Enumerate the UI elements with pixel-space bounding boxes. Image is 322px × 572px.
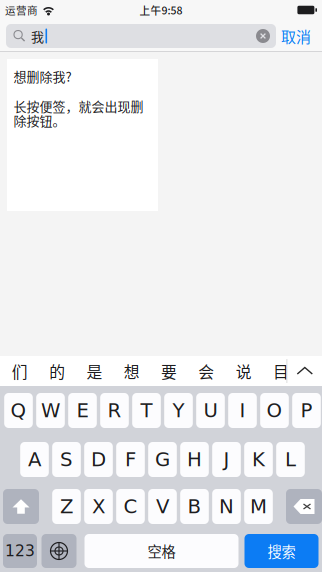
staticText: 空格	[147, 541, 175, 561]
button[interactable]: Shift	[3, 489, 39, 524]
staticText: C	[123, 495, 137, 518]
button[interactable]: L	[276, 442, 305, 477]
staticText: E	[76, 399, 88, 422]
button[interactable]: Q	[4, 393, 33, 428]
staticText: S	[60, 448, 73, 471]
button[interactable]: 的	[38, 356, 76, 386]
staticText: 长按便签，就会出现删	[13, 96, 143, 115]
staticText: J	[223, 448, 229, 471]
staticText: N	[219, 495, 234, 518]
staticText: 除按钮。	[13, 111, 65, 129]
button[interactable]: W	[36, 393, 65, 428]
staticText: W	[41, 399, 60, 422]
button[interactable]: S	[52, 442, 81, 477]
button[interactable]: D	[84, 442, 113, 477]
staticText: Q	[10, 399, 26, 422]
staticText: H	[187, 448, 202, 471]
button[interactable]: E	[68, 393, 97, 428]
staticText: F	[125, 448, 136, 471]
staticText: 搜索	[267, 541, 295, 561]
staticText: A	[28, 448, 41, 471]
button[interactable]: Y	[164, 393, 193, 428]
button[interactable]: I	[228, 393, 257, 428]
staticText: B	[187, 495, 201, 518]
button[interactable]: 想	[113, 356, 150, 386]
button[interactable]: A	[20, 442, 49, 477]
button[interactable]: B	[180, 489, 209, 524]
staticText: 的	[49, 360, 65, 382]
staticText: I	[239, 399, 245, 422]
button[interactable]: T	[132, 393, 161, 428]
button[interactable]: 会	[188, 356, 225, 386]
button[interactable]: X	[84, 489, 113, 524]
button[interactable]: K	[244, 442, 273, 477]
staticText: 是	[86, 360, 102, 382]
staticText: 上午9:58	[139, 2, 182, 18]
button[interactable]: Z	[52, 489, 81, 524]
staticText: O	[266, 399, 282, 422]
button[interactable]: 搜索	[244, 534, 318, 568]
button[interactable]: J	[212, 442, 241, 477]
staticText: 要	[161, 360, 177, 382]
staticText: X	[92, 495, 105, 518]
staticText: Z	[60, 495, 73, 518]
staticText: U	[203, 399, 217, 422]
button[interactable]: 目	[262, 356, 300, 386]
staticText: T	[140, 399, 152, 422]
button[interactable]: 说	[225, 356, 262, 386]
staticText: 取消	[281, 25, 311, 47]
button[interactable]: Show more candidates	[287, 356, 322, 386]
button[interactable]: C	[116, 489, 145, 524]
staticText: 目	[273, 360, 289, 382]
button[interactable]: 123	[3, 534, 37, 568]
button[interactable]: G	[148, 442, 177, 477]
staticText: 会	[198, 360, 214, 382]
button[interactable]: M	[244, 489, 273, 524]
staticText: D	[91, 448, 106, 471]
staticText: Y	[172, 399, 184, 422]
staticText: 们	[12, 360, 28, 382]
button[interactable]: P	[292, 393, 321, 428]
button[interactable]: 要	[150, 356, 188, 386]
button[interactable]: V	[148, 489, 177, 524]
staticText: 说	[236, 360, 252, 382]
staticText: 想	[124, 360, 140, 382]
button[interactable]: 取消	[281, 24, 311, 48]
staticText: L	[285, 448, 296, 471]
button[interactable]: Next keyboard	[41, 534, 76, 568]
staticText: M	[250, 495, 267, 518]
staticText: P	[300, 399, 312, 422]
staticText: 我	[31, 27, 44, 45]
staticText: K	[252, 448, 265, 471]
button[interactable]: 是	[76, 356, 113, 386]
staticText: 想删除我?	[13, 67, 71, 85]
button[interactable]: Delete	[286, 489, 322, 524]
button[interactable]: O	[260, 393, 289, 428]
button[interactable]: H	[180, 442, 209, 477]
staticText: G	[155, 448, 170, 471]
button[interactable]: 空格	[84, 534, 238, 568]
button[interactable]: Clear text	[253, 24, 273, 48]
button[interactable]: R	[100, 393, 129, 428]
button[interactable]: 们	[1, 356, 38, 386]
button[interactable]: U	[196, 393, 225, 428]
staticText: 运营商	[5, 2, 38, 18]
button[interactable]: F	[116, 442, 145, 477]
staticText: R	[107, 399, 121, 422]
button[interactable]: N	[212, 489, 241, 524]
staticText: 123	[5, 542, 35, 560]
staticText: V	[156, 495, 169, 518]
